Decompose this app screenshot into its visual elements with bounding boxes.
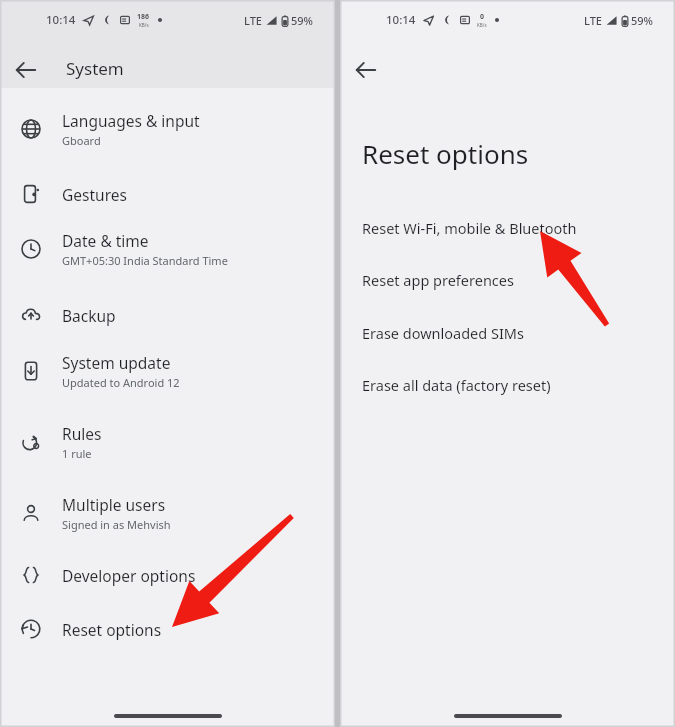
staticText: KB/s — [477, 22, 487, 28]
button[interactable]: Reset app preferences — [340, 260, 675, 300]
staticText: Languages & input — [62, 110, 200, 131]
staticText: System update — [62, 352, 171, 373]
staticText: Rules — [62, 423, 102, 444]
button[interactable]: Rules — [0, 415, 335, 469]
staticText: 59% — [291, 13, 313, 28]
button[interactable]: System update — [0, 344, 335, 398]
button[interactable]: Reset Wi-Fi, mobile & Bluetooth — [340, 208, 675, 248]
button[interactable]: Developer options — [0, 553, 335, 597]
staticText: 0 — [480, 12, 485, 22]
staticText: Backup — [62, 305, 116, 326]
staticText: 186 — [137, 12, 150, 22]
button[interactable]: Erase downloaded SIMs — [340, 313, 675, 353]
button[interactable]: Date & time — [0, 222, 335, 276]
staticText: Updated to Android 12 — [62, 375, 180, 390]
button[interactable]: Multiple users — [0, 486, 335, 540]
button[interactable]: Back — [346, 50, 386, 90]
staticText: System — [66, 57, 124, 80]
staticText: Reset options — [62, 619, 162, 640]
staticText: GMT+05:30 India Standard Time — [62, 253, 228, 268]
button[interactable]: Backup — [0, 293, 335, 337]
staticText: 1 rule — [62, 446, 92, 461]
staticText: Gestures — [62, 184, 127, 205]
staticText: Erase downloaded SIMs — [362, 323, 524, 343]
staticText: 10:14 — [386, 12, 416, 28]
button[interactable]: Languages & input — [0, 102, 335, 156]
staticText: Erase all data (factory reset) — [362, 375, 551, 395]
staticText: Multiple users — [62, 494, 166, 515]
staticText: LTE — [584, 13, 602, 28]
staticText: Developer options — [62, 565, 196, 586]
button[interactable]: Back — [6, 50, 46, 90]
staticText: Reset options — [362, 136, 529, 171]
button[interactable]: Reset options — [0, 607, 335, 651]
staticText: Date & time — [62, 230, 149, 251]
staticText: 10:14 — [46, 12, 76, 28]
staticText: Reset app preferences — [362, 270, 514, 290]
staticText: LTE — [244, 13, 262, 28]
staticText: Reset Wi-Fi, mobile & Bluetooth — [362, 218, 577, 238]
staticText: Gboard — [62, 133, 101, 148]
staticText: Signed in as Mehvish — [62, 517, 171, 532]
staticText: 59% — [631, 13, 653, 28]
button[interactable]: Erase all data (factory reset) — [340, 365, 675, 405]
button[interactable]: Gestures — [0, 172, 335, 216]
staticText: KB/s — [139, 22, 149, 28]
